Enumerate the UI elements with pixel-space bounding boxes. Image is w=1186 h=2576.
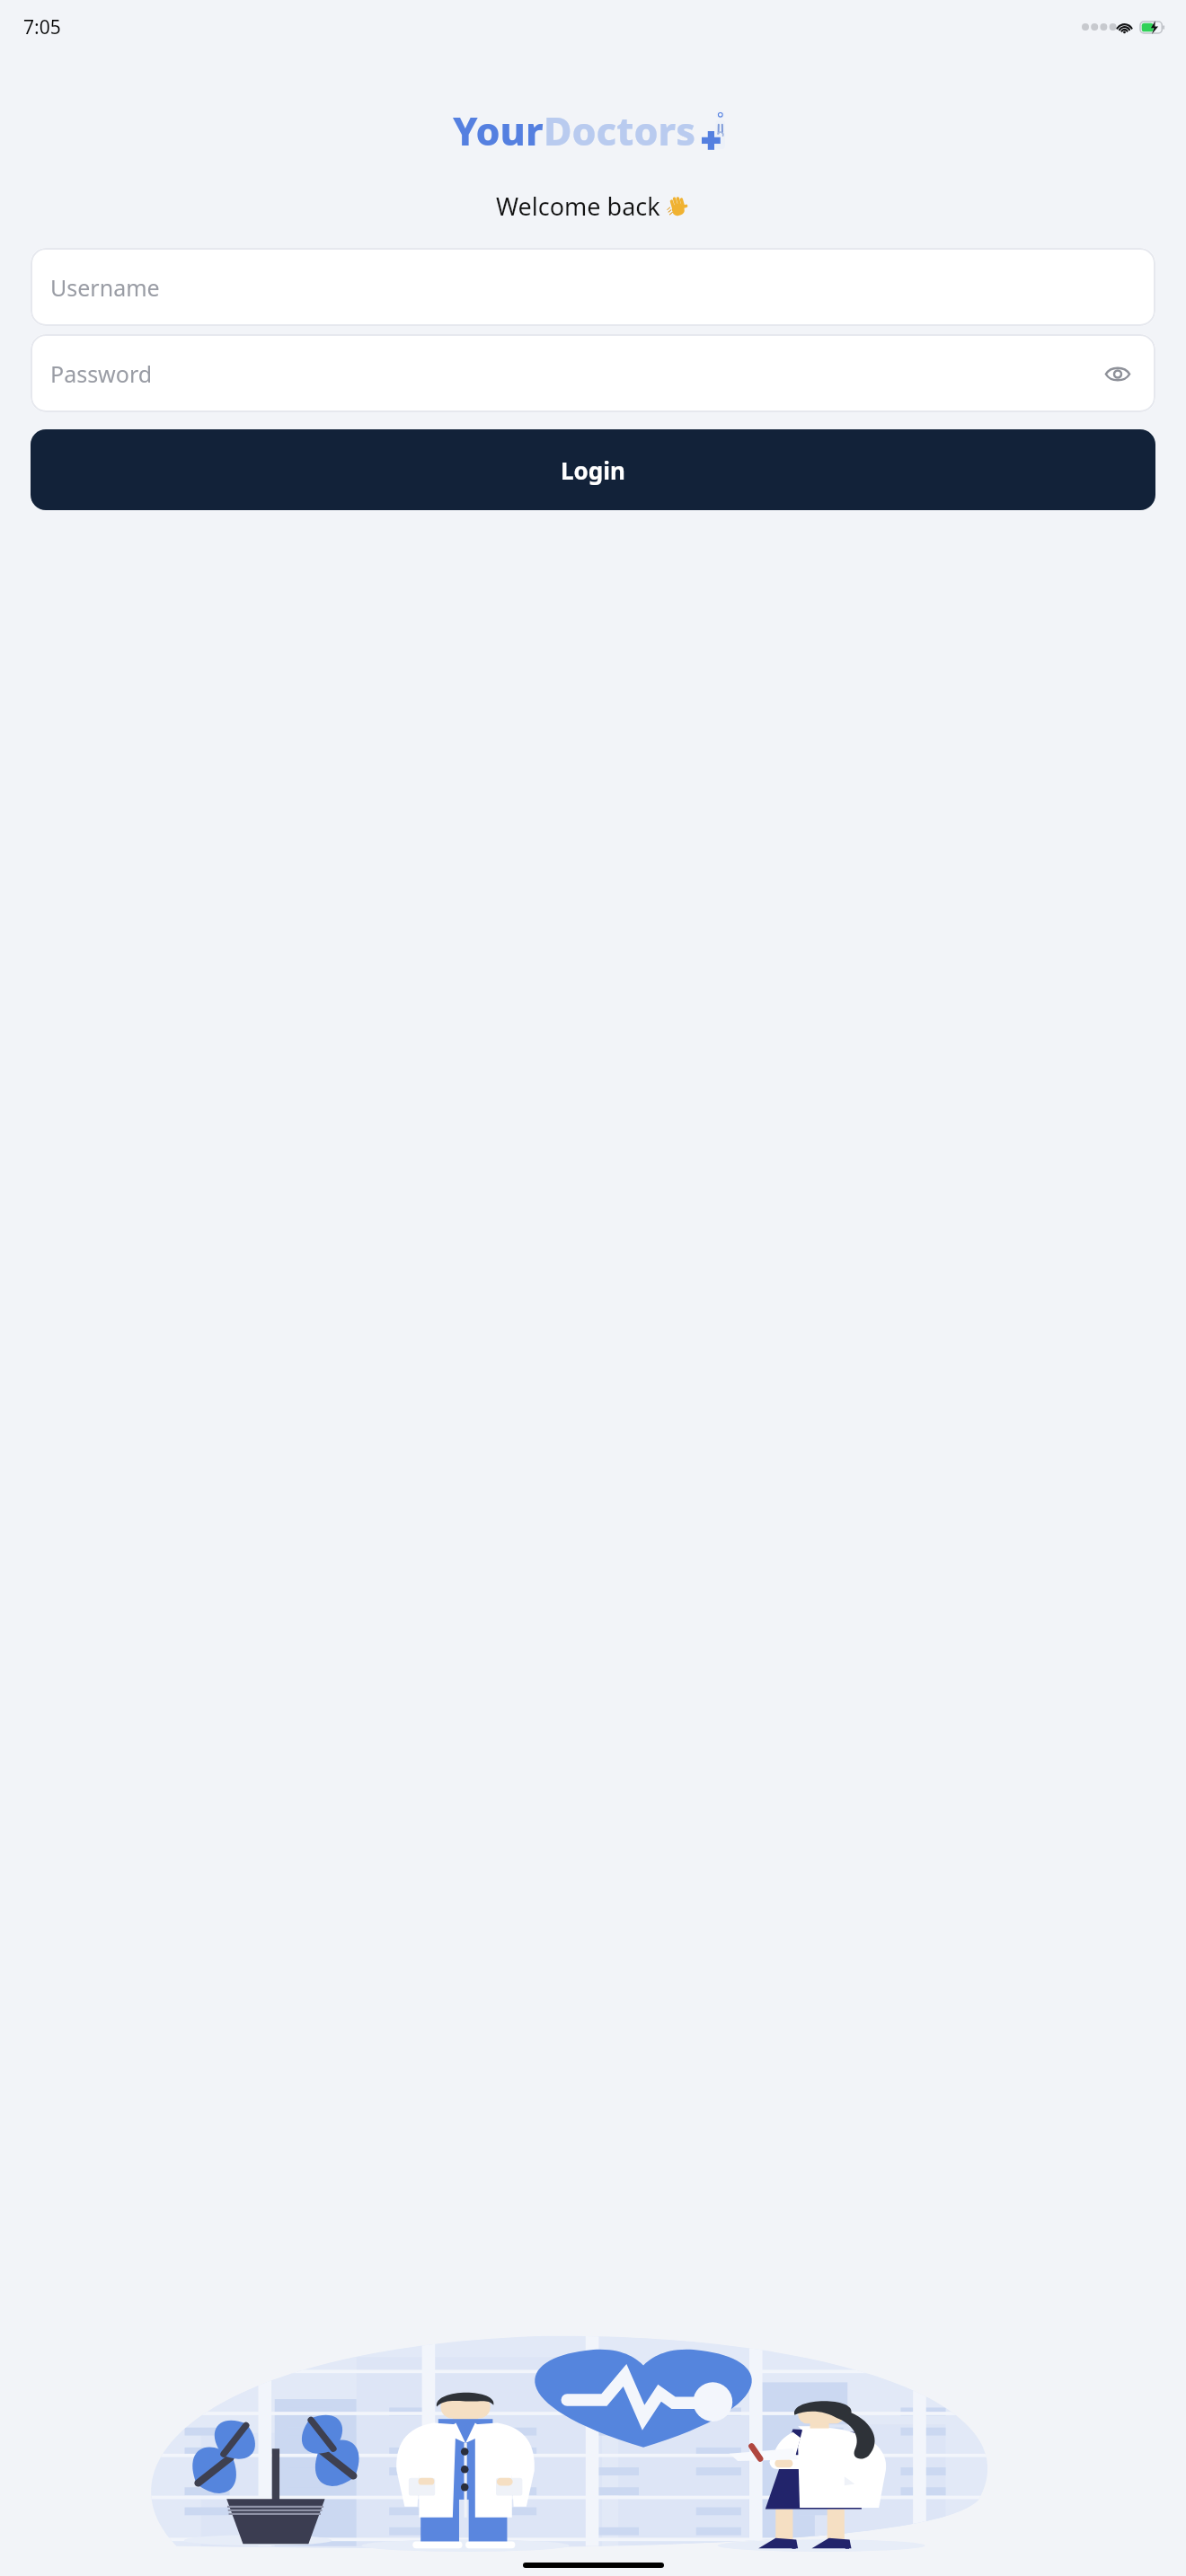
staticText: Login [561,454,625,486]
button[interactable]: Login [31,429,1155,510]
staticText: Your [453,104,544,157]
staticText: Password [50,358,153,389]
staticText: Username [50,272,160,303]
button[interactable]: Username [31,248,1155,326]
button[interactable]: Password [31,334,1155,412]
button[interactable]: Show password [1098,354,1137,393]
staticText: 7:05 [23,14,61,40]
staticText: Welcome back [496,190,667,223]
staticText: Doctors [544,104,696,157]
